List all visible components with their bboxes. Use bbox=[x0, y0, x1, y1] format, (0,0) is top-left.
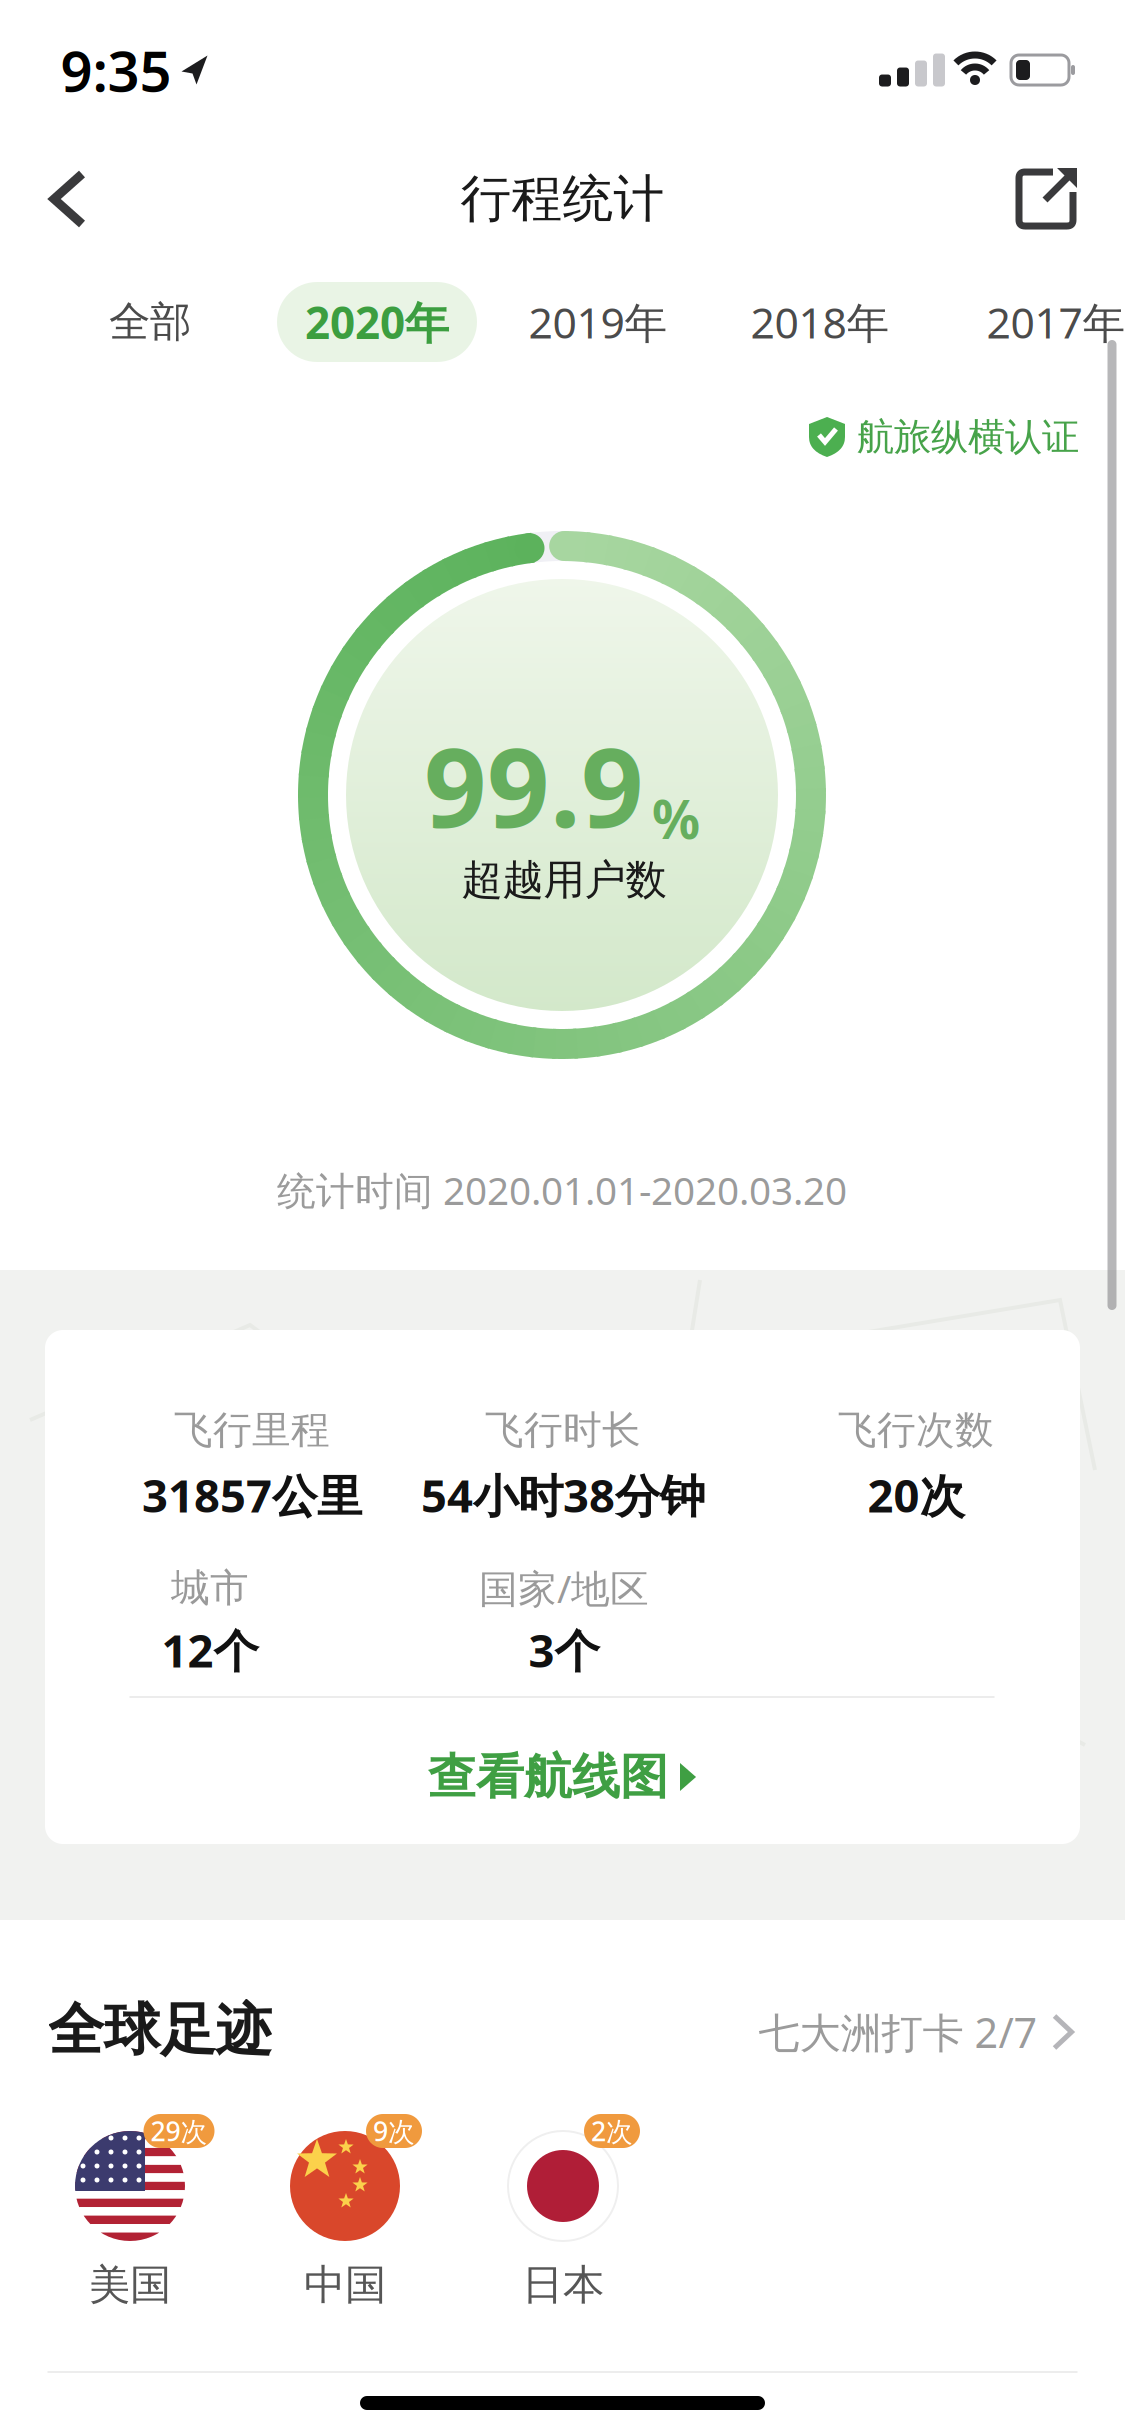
staticText: 2017年 bbox=[986, 294, 1125, 350]
button[interactable]: 中国 bbox=[290, 2131, 400, 2241]
staticText: 全球足迹 bbox=[48, 1996, 272, 2064]
button[interactable]: 日本 bbox=[508, 2131, 618, 2241]
staticText: 2018年 bbox=[750, 294, 889, 350]
staticText: 31857公里 bbox=[142, 1465, 362, 1525]
staticText: 美国 bbox=[89, 2260, 171, 2310]
button[interactable]: 2018年 bbox=[750, 294, 889, 350]
staticText: 3个 bbox=[528, 1620, 599, 1680]
staticText: 统计时间 2020.01.01-2020.03.20 bbox=[277, 1164, 847, 1216]
staticText: 超越用户数 bbox=[461, 855, 666, 905]
staticText: 9:35 bbox=[60, 33, 171, 107]
button[interactable]: 全部 bbox=[109, 297, 191, 347]
staticText: 行程统计 bbox=[460, 168, 664, 230]
button[interactable]: 美国 bbox=[75, 2131, 185, 2241]
button[interactable]: Share bbox=[1001, 154, 1091, 244]
staticText: 航旅纵横认证 bbox=[857, 414, 1079, 460]
staticText: 飞行时长 bbox=[485, 1406, 641, 1454]
button[interactable]: Back bbox=[26, 150, 110, 248]
staticText: 七大洲打卡 2/7 bbox=[758, 2005, 1037, 2059]
staticText: 飞行里程 bbox=[174, 1406, 330, 1454]
button[interactable]: 2017年 bbox=[986, 294, 1125, 350]
staticText: 2019年 bbox=[528, 294, 667, 350]
staticText: 20次 bbox=[867, 1465, 964, 1525]
staticText: 12个 bbox=[161, 1620, 258, 1680]
staticText: 2次 bbox=[591, 2113, 633, 2149]
staticText: % bbox=[652, 783, 700, 854]
staticText: 99.9 bbox=[424, 712, 644, 858]
button[interactable]: 2019年 bbox=[528, 294, 667, 350]
staticText: 国家/地区 bbox=[479, 1562, 649, 1614]
staticText: 查看航线图 bbox=[428, 1747, 668, 1806]
staticText: 9次 bbox=[373, 2113, 415, 2149]
staticText: 全部 bbox=[109, 297, 191, 347]
staticText: 城市 bbox=[171, 1564, 249, 1612]
staticText: 54小时38分钟 bbox=[421, 1465, 705, 1525]
staticText: 中国 bbox=[304, 2260, 386, 2310]
button[interactable]: 查看航线图 bbox=[428, 1747, 698, 1806]
staticText: 日本 bbox=[522, 2260, 604, 2310]
staticText: 29次 bbox=[150, 2113, 207, 2149]
staticText: 飞行次数 bbox=[838, 1406, 994, 1454]
staticText: 2020年 bbox=[305, 293, 449, 351]
button[interactable]: 七大洲打卡 2/7 bbox=[758, 2005, 1075, 2059]
button[interactable]: 2020年 bbox=[277, 282, 477, 362]
